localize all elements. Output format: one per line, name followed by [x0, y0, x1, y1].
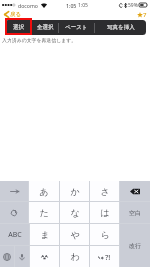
staticText: 改行: [129, 242, 141, 250]
button[interactable]: ま: [30, 224, 59, 245]
button[interactable]: な: [60, 202, 89, 223]
staticText: 写真を挿入: [107, 24, 135, 31]
staticText: や: [70, 229, 80, 240]
other: Undo: [10, 209, 18, 217]
button[interactable]: ?!: [90, 246, 119, 267]
button[interactable]: 選択: [5, 20, 31, 35]
staticText: さ: [100, 186, 110, 197]
staticText: ペースト: [65, 24, 88, 31]
staticText: 空白: [129, 209, 141, 217]
staticText: ABC: [8, 230, 22, 240]
button[interactable]: ABC: [0, 224, 29, 245]
button[interactable]: Next candidate: [0, 181, 28, 201]
staticText: 選択: [13, 24, 24, 31]
button[interactable]: Delete: [120, 181, 150, 201]
button[interactable]: Emoji: [30, 246, 59, 267]
button[interactable]: や: [60, 224, 89, 245]
button[interactable]: 空白: [120, 202, 150, 223]
staticText: あ: [39, 186, 49, 197]
staticText: docomo: [18, 2, 38, 9]
staticText: た: [39, 207, 49, 218]
button[interactable]: あ: [29, 181, 59, 201]
button[interactable]: ら: [90, 224, 119, 245]
staticText: 入力済みの文字を再送信します。: [2, 37, 77, 43]
button[interactable]: わ: [60, 246, 89, 267]
other: Next candidate: [10, 189, 19, 194]
staticText: ?!: [105, 252, 111, 262]
staticText: な: [70, 207, 80, 218]
staticText: 1:05: [66, 2, 77, 9]
button[interactable]: Favorite count: [135, 11, 150, 19]
staticText: 全選択: [37, 24, 54, 31]
staticText: ら: [100, 229, 110, 240]
staticText: 1:05: [78, 2, 88, 9]
staticText: か: [70, 186, 80, 197]
button[interactable]: 全選択: [32, 20, 58, 35]
button[interactable]: Dictate: [15, 246, 29, 267]
staticText: わ: [70, 251, 80, 262]
button[interactable]: ペースト: [59, 20, 94, 35]
button[interactable]: か: [60, 181, 89, 201]
other: Delete: [130, 188, 140, 195]
button[interactable]: 改行: [120, 224, 150, 267]
button[interactable]: さ: [90, 181, 119, 201]
button[interactable]: 写真を挿入: [95, 20, 146, 35]
staticText: 戻る: [10, 11, 22, 18]
staticText: ま: [40, 229, 50, 240]
staticText: 7: [143, 11, 147, 19]
button[interactable]: 戻る: [0, 11, 24, 18]
button[interactable]: Undo: [0, 202, 28, 223]
staticText: は: [100, 207, 110, 218]
button[interactable]: Change keyboard: [0, 246, 14, 267]
staticText: 59%: [128, 2, 138, 9]
button[interactable]: は: [90, 202, 119, 223]
button[interactable]: た: [29, 202, 59, 223]
